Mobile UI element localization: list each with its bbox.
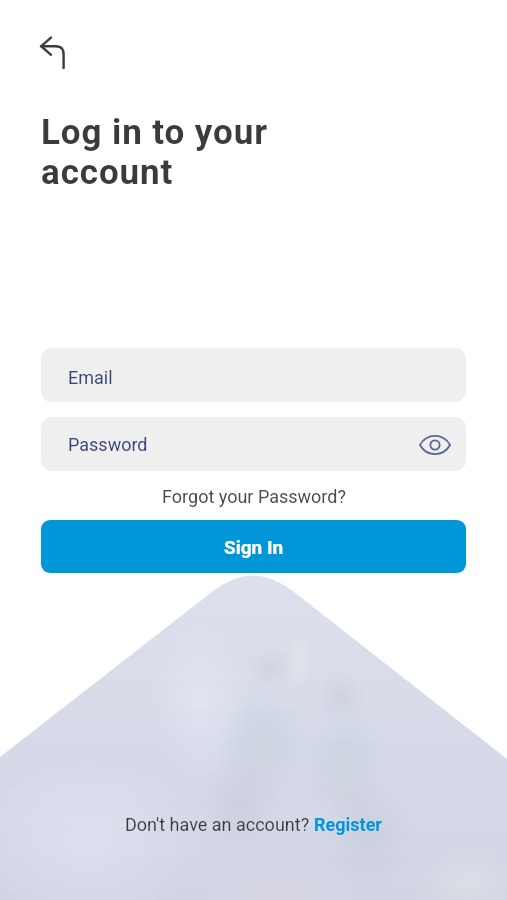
staticText: Register bbox=[314, 814, 382, 835]
staticText: Log in to your account bbox=[41, 112, 268, 192]
button[interactable]: Email bbox=[41, 348, 466, 402]
button[interactable]: Register bbox=[314, 814, 382, 835]
staticText: Email bbox=[68, 367, 113, 388]
button[interactable]: Password bbox=[41, 417, 466, 471]
button[interactable]: Sign In bbox=[41, 520, 466, 573]
staticText: Password bbox=[68, 434, 148, 455]
button[interactable]: Forgot your Password? bbox=[162, 486, 346, 507]
staticText: Don't have an account? bbox=[125, 814, 314, 835]
staticText: Sign In bbox=[224, 536, 284, 558]
button[interactable]: Show password bbox=[417, 427, 453, 463]
button[interactable]: Back bbox=[26, 27, 72, 73]
staticText: Forgot your Password? bbox=[162, 486, 346, 507]
